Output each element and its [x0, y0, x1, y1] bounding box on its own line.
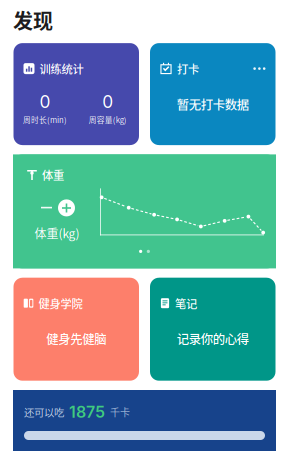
button[interactable]: 训练统计 [13, 43, 139, 145]
staticText: 打卡 [177, 60, 199, 77]
staticText: 千卡 [110, 405, 130, 419]
staticText: 周时长(min) [23, 114, 67, 125]
staticText: 1875 [69, 402, 105, 422]
button[interactable]: 体重 [13, 154, 276, 268]
button[interactable]: 健身学院 [13, 278, 139, 381]
staticText: 0 [102, 91, 113, 112]
button[interactable]: 还可以吃 [13, 390, 276, 451]
staticText: 体重 [42, 167, 64, 183]
staticText: 周容量(kg) [89, 114, 127, 125]
staticText: 健身学院 [38, 295, 82, 311]
staticText: 发现 [13, 5, 53, 34]
button[interactable]: 笔记 [150, 278, 275, 381]
staticText: 健身先健脑 [46, 330, 106, 348]
staticText: 还可以吃 [24, 404, 64, 420]
staticText: 体重(kg) [34, 224, 79, 242]
staticText: 记录你的心得 [177, 330, 249, 348]
staticText: 笔记 [175, 295, 197, 311]
staticText: 训练统计 [39, 60, 83, 77]
button[interactable]: 打卡 [150, 43, 275, 145]
staticText: 暂无打卡数据 [177, 95, 249, 113]
staticText: 0 [39, 91, 50, 112]
